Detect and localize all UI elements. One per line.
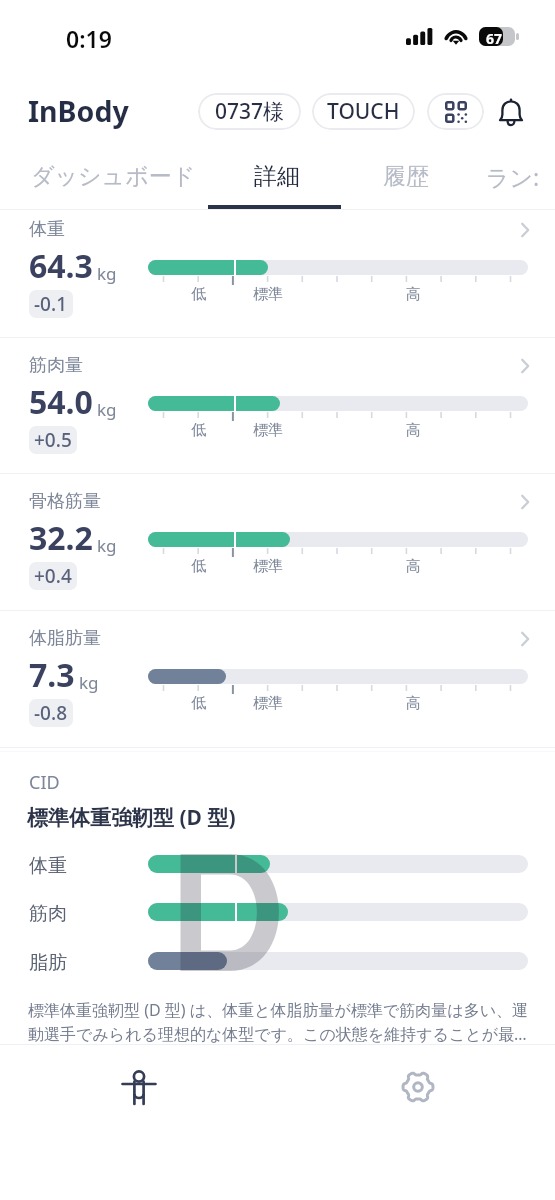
staticText: 体脂肪量 bbox=[29, 627, 101, 650]
staticText: 低 bbox=[191, 421, 206, 440]
staticText: 高 bbox=[406, 285, 421, 304]
staticText: 標準 bbox=[253, 557, 283, 576]
staticText: 7.3 bbox=[29, 653, 75, 697]
staticText: 低 bbox=[191, 557, 206, 576]
button[interactable]: Open 体重 bbox=[508, 213, 542, 247]
button[interactable]: QR code bbox=[427, 93, 484, 130]
staticText: 高 bbox=[406, 557, 421, 576]
button[interactable]: Open 骨格筋量 bbox=[508, 485, 542, 519]
staticText: 標準 bbox=[253, 694, 283, 713]
staticText: 脂肪 bbox=[29, 951, 67, 975]
button[interactable]: 履歴 bbox=[369, 153, 443, 199]
staticText: 低 bbox=[191, 694, 206, 713]
staticText: 32.2 bbox=[29, 516, 93, 560]
staticText: 骨格筋量 bbox=[29, 490, 101, 513]
staticText: -0.1 bbox=[34, 291, 68, 317]
staticText: 標準 bbox=[253, 285, 283, 304]
staticText: 詳細 bbox=[254, 162, 300, 191]
staticText: 履歴 bbox=[383, 162, 429, 191]
staticText: 標準体重強靭型 (D 型) bbox=[27, 803, 236, 832]
staticText: InBody bbox=[28, 92, 129, 131]
button[interactable]: TOUCH bbox=[312, 93, 415, 130]
staticText: 体重 bbox=[29, 854, 67, 878]
staticText: +0.5 bbox=[34, 427, 72, 453]
staticText: kg bbox=[97, 534, 117, 557]
button[interactable]: ラン: bbox=[472, 153, 554, 199]
staticText: 0737様 bbox=[215, 97, 285, 126]
staticText: +0.4 bbox=[34, 563, 72, 589]
staticText: TOUCH bbox=[327, 97, 400, 126]
staticText: 64.3 bbox=[29, 244, 93, 288]
staticText: ラン: bbox=[486, 161, 540, 192]
staticText: CID bbox=[29, 770, 60, 795]
staticText: 筋肉量 bbox=[29, 354, 83, 377]
staticText: -0.8 bbox=[34, 700, 68, 726]
staticText: kg bbox=[97, 398, 117, 421]
button[interactable]: 0737様 bbox=[198, 93, 301, 130]
staticText: 体重 bbox=[29, 218, 65, 241]
staticText: 標準 bbox=[253, 421, 283, 440]
staticText: 筋肉 bbox=[29, 902, 67, 926]
staticText: 54.0 bbox=[29, 380, 93, 424]
button[interactable]: Notifications bbox=[493, 91, 530, 133]
staticText: 67 bbox=[486, 29, 503, 48]
staticText: 標準体重強靭型 (D 型) は、体重と体脂肪量が標準で筋肉量は多い、運動選手でみ… bbox=[28, 999, 530, 1045]
staticText: 0:19 bbox=[66, 23, 112, 54]
staticText: 低 bbox=[191, 285, 206, 304]
button[interactable]: 詳細 bbox=[240, 153, 314, 199]
staticText: ダッシュボード bbox=[31, 162, 196, 191]
button[interactable]: Settings bbox=[390, 1058, 445, 1116]
staticText: 高 bbox=[406, 421, 421, 440]
button[interactable]: Open 体脂肪量 bbox=[508, 622, 542, 656]
button[interactable]: ダッシュボード bbox=[17, 153, 210, 199]
staticText: 高 bbox=[406, 694, 421, 713]
button[interactable]: Open 筋肉量 bbox=[508, 349, 542, 383]
staticText: kg bbox=[97, 262, 117, 285]
staticText: kg bbox=[79, 671, 99, 694]
button[interactable]: Body bbox=[120, 1068, 158, 1106]
